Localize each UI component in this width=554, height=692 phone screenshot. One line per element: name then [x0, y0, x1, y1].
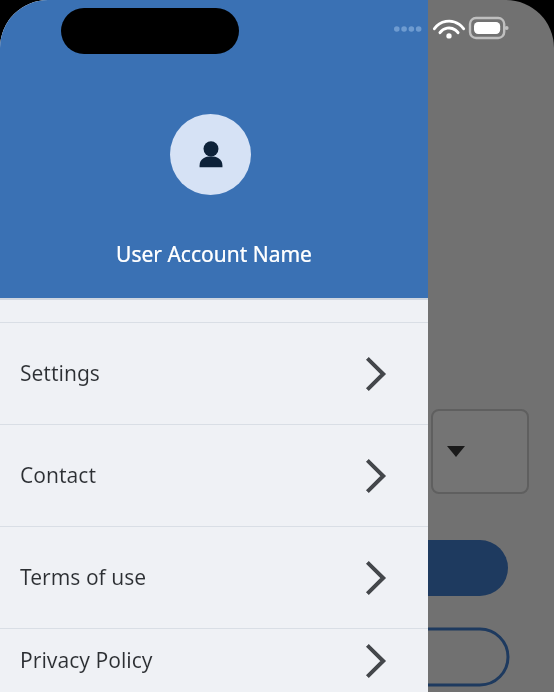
button[interactable]: Profile picture	[170, 114, 251, 195]
staticText: Privacy Policy	[20, 646, 153, 675]
button[interactable]: Contact	[0, 425, 428, 526]
button[interactable]: Settings	[0, 323, 428, 424]
staticText: Terms of use	[20, 563, 147, 592]
button[interactable]	[400, 629, 508, 685]
button[interactable]: Privacy Policy	[0, 629, 428, 692]
button[interactable]	[432, 410, 528, 493]
staticText: Contact	[20, 461, 96, 490]
button[interactable]: Terms of use	[0, 527, 428, 628]
staticText: Settings	[20, 359, 100, 388]
button[interactable]	[400, 540, 508, 596]
staticText: User Account Name	[0, 240, 428, 269]
staticText: 11:13	[68, 11, 125, 41]
